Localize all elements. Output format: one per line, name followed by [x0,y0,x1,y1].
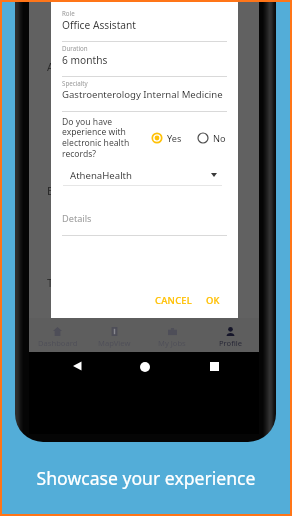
button[interactable]: Dashboard [29,320,86,354]
staticText: Duration [62,44,88,52]
staticText: No [213,132,226,145]
staticText: Gastroenterology Internal Medicine [62,88,223,101]
staticText: Profile [219,338,242,348]
button[interactable]: OK [201,290,225,311]
staticText: Do you have experience with electronic h… [62,116,132,160]
button[interactable]: Profile [201,320,259,354]
staticText: OK [206,294,220,307]
staticText: My Jobs [158,338,186,348]
button[interactable]: Home [140,362,150,372]
button[interactable]: Yes [151,131,182,145]
button[interactable]: No [197,131,226,145]
button[interactable]: MapView [86,320,143,354]
staticText: Yes [167,132,182,145]
button[interactable]: My Jobs [143,320,201,354]
staticText: Education [47,183,99,198]
staticText: Specialty [62,79,88,87]
button[interactable]: AthenaHealth [63,166,217,184]
staticText: Dashboard [38,338,78,348]
staticText: Showcase your experience [0,466,292,490]
staticText: AthenaHealth [70,169,133,182]
staticText: Details [62,212,92,225]
staticText: Role [62,9,75,17]
staticText: CANCEL [155,294,193,307]
button[interactable]: Back [73,361,83,371]
button[interactable]: CANCEL [150,290,198,311]
staticText: MapView [98,338,131,348]
staticText: Training [47,275,90,290]
staticText: Add experience [47,59,128,74]
staticText: 6 months [62,53,108,67]
staticText: Office Assistant [62,18,137,32]
